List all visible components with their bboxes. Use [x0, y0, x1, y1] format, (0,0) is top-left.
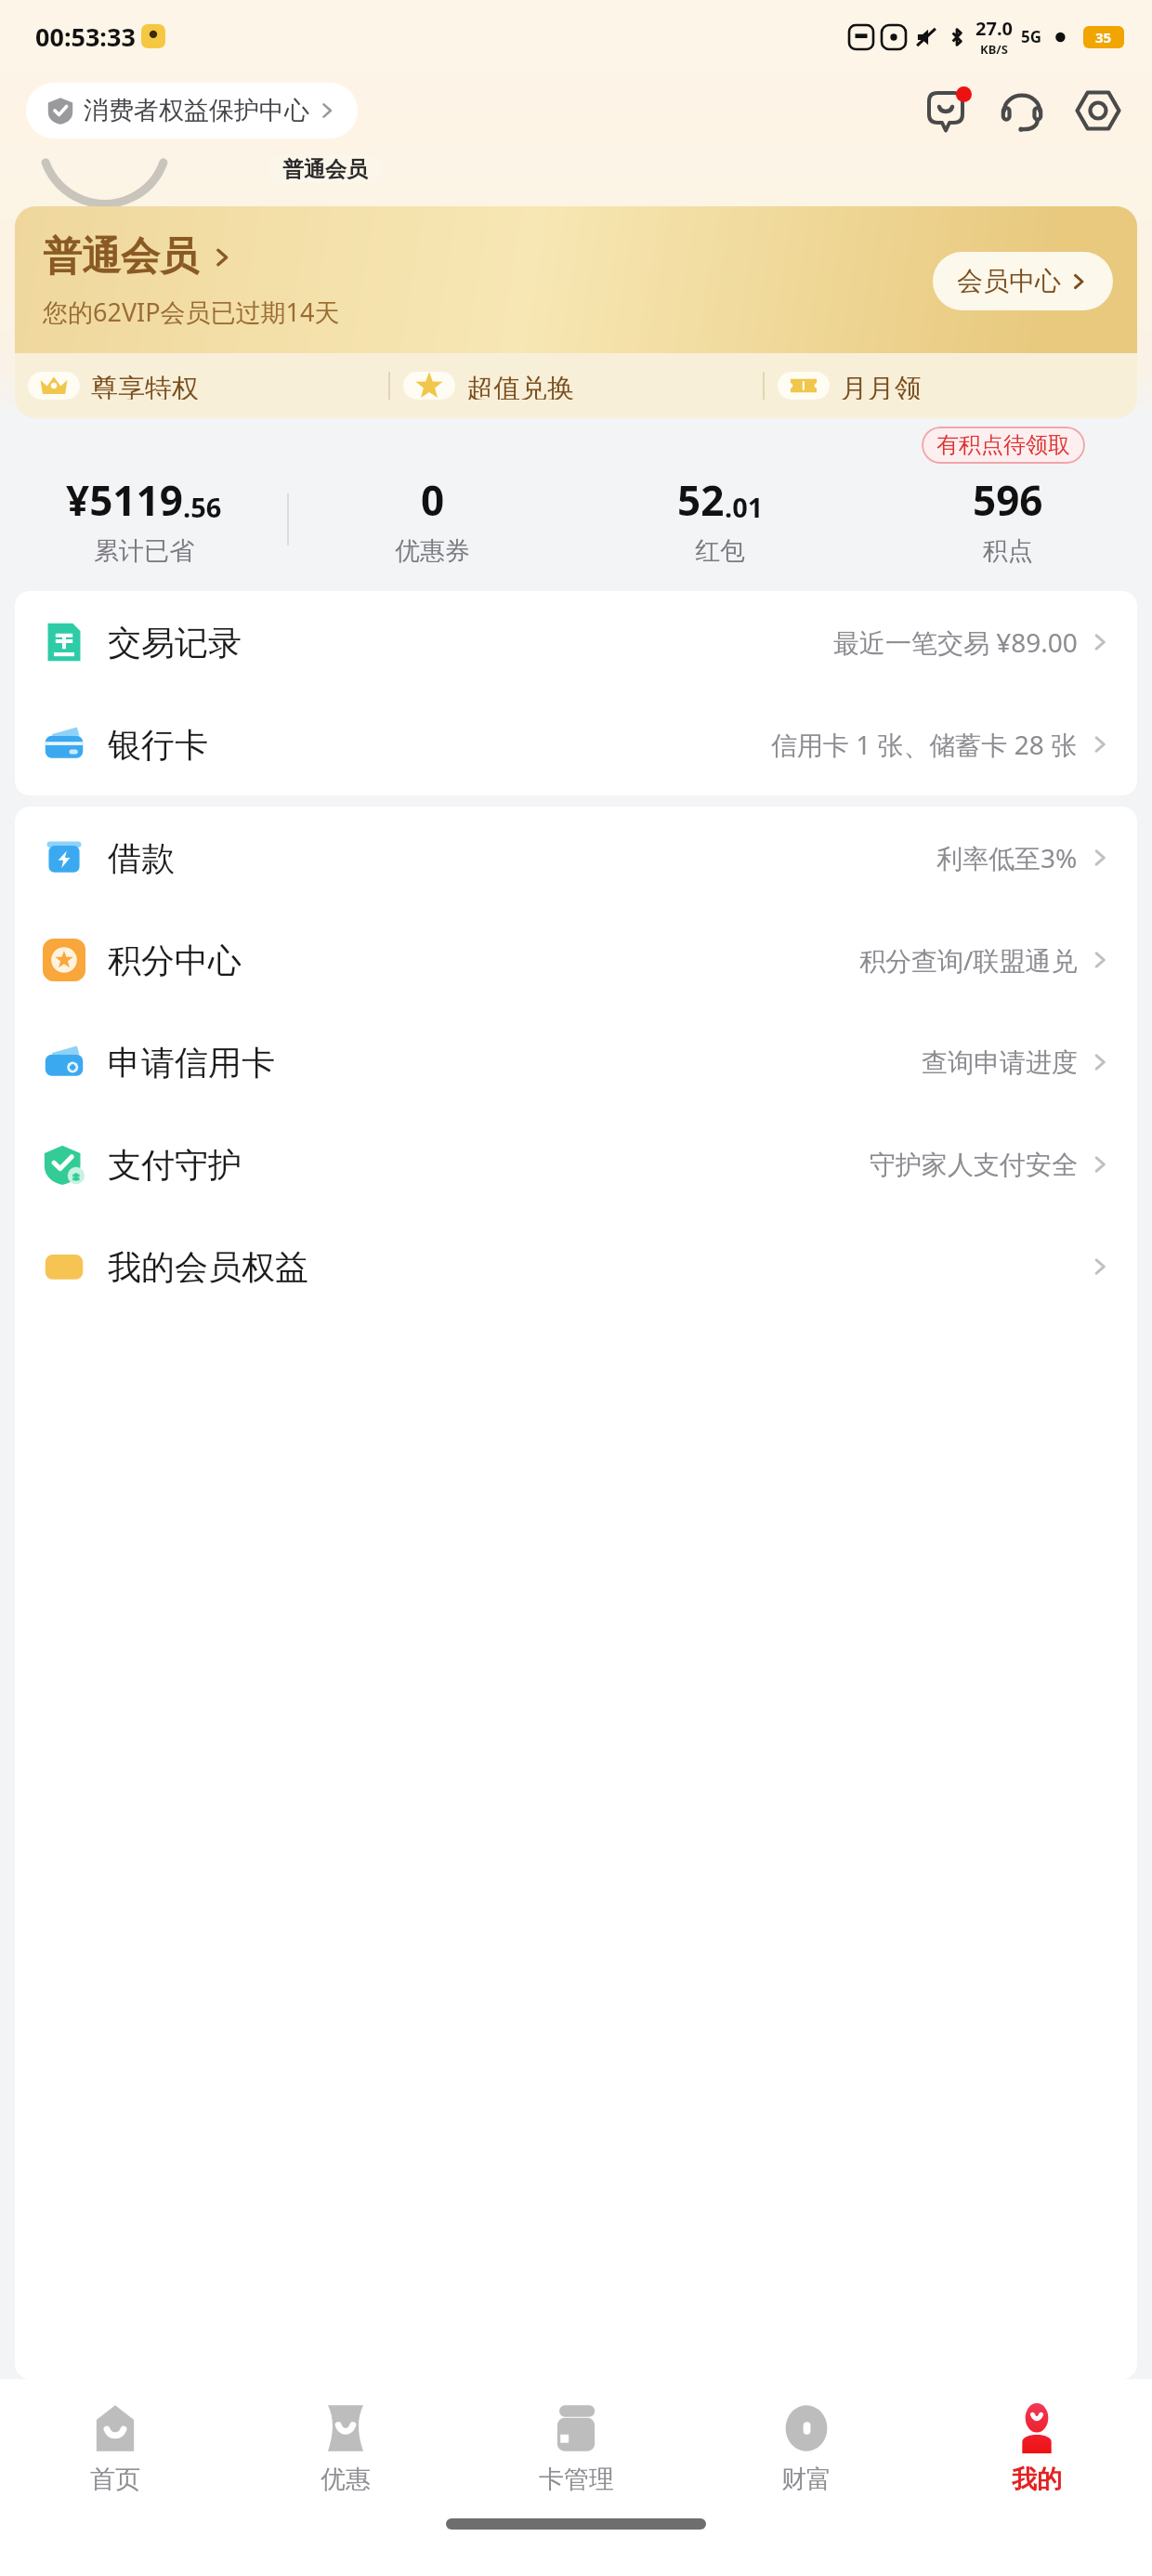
button[interactable]: 我的	[922, 2379, 1152, 2518]
staticText: 支付守护	[108, 1144, 242, 1186]
button[interactable]: 消费者权益保护中心	[26, 83, 358, 138]
button[interactable]: 有积点待领取	[922, 427, 1085, 464]
button[interactable]: 首页	[0, 2379, 230, 2518]
staticText: 信用卡 1 张、储蓄卡 28 张	[771, 727, 1078, 762]
button[interactable]: 0	[289, 472, 576, 567]
staticText: 消费者权益保护中心	[84, 95, 309, 126]
button[interactable]: 尊享特权	[15, 372, 388, 400]
button[interactable]: 卡管理	[461, 2379, 691, 2518]
staticText: 超值兑换	[466, 372, 574, 400]
staticText: 0	[421, 472, 445, 528]
button[interactable]: 会员中心	[933, 252, 1113, 310]
button[interactable]: 财富	[691, 2379, 922, 2518]
staticText: 5G	[1021, 26, 1042, 47]
staticText: 财富	[781, 2464, 831, 2495]
staticText: 红包	[695, 535, 745, 567]
staticText: 最近一笔交易 ¥89.00	[833, 624, 1078, 660]
button[interactable]: 我的会员权益	[15, 1216, 1137, 1318]
staticText: 普通会员	[282, 156, 368, 183]
staticText: 累计已省	[94, 535, 194, 567]
staticText: 会员中心	[957, 265, 1061, 297]
staticText: 借款	[108, 837, 175, 879]
staticText: 卡管理	[539, 2464, 614, 2495]
button[interactable]: 优惠	[230, 2379, 461, 2518]
button[interactable]: 月月领	[765, 372, 1137, 400]
button[interactable]: Settings	[1070, 83, 1126, 138]
staticText: 尊享特权	[91, 372, 199, 400]
staticText: .56	[183, 489, 222, 525]
button[interactable]: 普通会员	[15, 206, 1137, 353]
staticText: 我的会员权益	[108, 1246, 308, 1288]
button[interactable]: 超值兑换	[390, 372, 763, 400]
staticText: 积分查询/联盟通兑	[859, 942, 1078, 978]
button[interactable]: 52	[576, 472, 864, 567]
staticText: 我的	[1012, 2464, 1062, 2495]
staticText: 普通会员	[43, 232, 199, 282]
staticText: 27.0	[975, 16, 1013, 41]
staticText: .01	[725, 489, 764, 525]
staticText: 银行卡	[108, 724, 208, 766]
staticText: ¥5119	[66, 472, 183, 528]
button[interactable]: 银行卡	[15, 693, 1137, 795]
staticText: 您的62VIP会员已过期14天	[43, 295, 340, 329]
staticText: 积点	[983, 535, 1033, 567]
staticText: KB/S	[980, 41, 1008, 58]
staticText: 35	[1095, 28, 1112, 46]
button[interactable]: Customer service	[994, 83, 1050, 138]
button[interactable]: 申请信用卡	[15, 1011, 1137, 1113]
staticText: 52	[677, 472, 725, 528]
staticText: 首页	[90, 2464, 140, 2495]
button[interactable]: 交易记录	[15, 591, 1137, 693]
staticText: 积分中心	[108, 940, 242, 981]
button[interactable]: 596	[864, 472, 1152, 567]
staticText: 交易记录	[108, 622, 242, 664]
staticText: 优惠券	[395, 535, 470, 567]
button[interactable]: Messages	[918, 83, 974, 138]
button[interactable]: 积分中心	[15, 909, 1137, 1011]
staticText: 00:53:33	[35, 20, 136, 54]
staticText: 查询申请进度	[922, 1046, 1078, 1079]
staticText: 利率低至3%	[936, 840, 1078, 875]
button[interactable]: 借款	[15, 807, 1137, 909]
staticText: 月月领	[841, 372, 922, 400]
button[interactable]: 支付守护	[15, 1113, 1137, 1216]
staticText: 申请信用卡	[108, 1042, 275, 1084]
staticText: 守护家人支付安全	[870, 1149, 1078, 1181]
staticText: 优惠	[321, 2464, 371, 2495]
staticText: 596	[973, 472, 1043, 528]
staticText: 有积点待领取	[936, 431, 1070, 459]
button[interactable]: ¥5119	[0, 472, 287, 567]
